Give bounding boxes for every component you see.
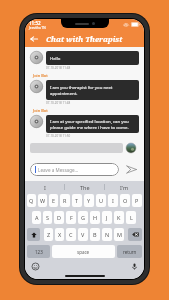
button[interactable]: S <box>43 211 52 224</box>
staticText: D <box>57 214 62 221</box>
staticText: T <box>75 197 79 204</box>
staticText: V <box>81 231 85 238</box>
button[interactable]: I <box>108 194 118 207</box>
button[interactable]: Send <box>123 161 139 177</box>
staticText: J <box>106 214 108 221</box>
staticText: Join Bot <box>33 108 48 113</box>
button[interactable]: U <box>96 194 106 207</box>
staticText: 07-10-2018 11:48 <box>46 101 71 105</box>
staticText: The <box>80 184 90 191</box>
button[interactable]: L <box>126 211 136 224</box>
button[interactable]: 123 <box>27 245 50 258</box>
staticText: I am at your specified location, can you… <box>50 118 129 130</box>
button[interactable]: R <box>60 194 70 207</box>
staticText: K <box>117 214 121 221</box>
button[interactable]: W <box>38 194 47 207</box>
button[interactable]: I am you therapist for you next appointm… <box>30 80 139 105</box>
button[interactable]: Hello <box>30 143 139 153</box>
button[interactable]: Shift <box>27 228 40 241</box>
button[interactable]: Voice input <box>129 261 139 271</box>
button[interactable]: Leave a Message... <box>30 163 119 176</box>
staticText: 07-10-2018 11:48 <box>46 66 71 70</box>
staticText: E <box>52 197 56 204</box>
staticText: Y <box>87 197 91 204</box>
staticText: Z <box>47 231 51 238</box>
staticText: I'm <box>120 184 129 191</box>
staticText: M <box>117 231 122 238</box>
staticText: I <box>44 184 46 191</box>
button[interactable]: Backspace <box>128 228 142 241</box>
staticText: R <box>63 197 67 204</box>
staticText: B <box>93 231 97 238</box>
staticText: Jeevitha TN <box>29 26 46 30</box>
button[interactable]: Hello <box>30 51 139 70</box>
button[interactable]: Z <box>44 228 53 241</box>
staticText: 123 <box>35 249 43 255</box>
staticText: C <box>69 231 73 238</box>
button[interactable]: K <box>114 211 124 224</box>
staticText: H <box>93 214 98 221</box>
button[interactable]: B <box>90 228 100 241</box>
staticText: Q <box>29 197 34 204</box>
button[interactable]: I am at your specified location, can you… <box>30 115 139 138</box>
staticText: Leave a Message... <box>38 167 79 173</box>
staticText: O <box>123 197 128 204</box>
staticText: Hello <box>50 55 61 61</box>
button[interactable]: The <box>65 181 104 193</box>
staticText: W <box>40 197 46 204</box>
button[interactable]: return <box>117 245 142 258</box>
button[interactable]: Emoji <box>30 261 40 271</box>
staticText: G <box>81 214 86 221</box>
staticText: I <box>112 197 114 204</box>
button[interactable]: F <box>66 211 76 224</box>
button[interactable]: I'm <box>105 181 144 193</box>
button[interactable]: N <box>102 228 112 241</box>
staticText: L <box>130 214 133 221</box>
button[interactable]: O <box>120 194 130 207</box>
button[interactable]: Y <box>84 194 94 207</box>
staticText: Chat with Therapist <box>46 34 123 44</box>
button[interactable]: E <box>49 194 58 207</box>
button[interactable]: I <box>25 181 64 193</box>
button[interactable]: G <box>78 211 88 224</box>
button[interactable]: P <box>132 194 142 207</box>
staticText: N <box>105 231 110 238</box>
button[interactable]: A <box>32 211 41 224</box>
button[interactable]: Q <box>27 194 36 207</box>
staticText: Join Bot <box>33 73 48 78</box>
button[interactable]: Back <box>25 30 42 47</box>
button[interactable]: V <box>78 228 88 241</box>
button[interactable]: space <box>52 245 115 258</box>
button[interactable]: C <box>66 228 76 241</box>
staticText: U <box>99 197 104 204</box>
button[interactable]: X <box>55 228 64 241</box>
button[interactable]: D <box>54 211 64 224</box>
staticText: X <box>58 231 62 238</box>
staticText: A <box>35 214 39 221</box>
staticText: S <box>46 214 50 221</box>
button[interactable]: M <box>114 228 124 241</box>
button[interactable]: T <box>72 194 82 207</box>
staticText: space <box>77 249 90 255</box>
staticText: 07-10-2018 11:50 <box>46 134 71 138</box>
staticText: return <box>123 249 137 255</box>
staticText: F <box>70 214 73 221</box>
staticText: 11:52 <box>29 20 41 26</box>
button[interactable]: J <box>102 211 112 224</box>
button[interactable]: H <box>90 211 100 224</box>
staticText: I am you therapist for you next appointm… <box>50 84 135 96</box>
staticText: P <box>135 197 139 204</box>
